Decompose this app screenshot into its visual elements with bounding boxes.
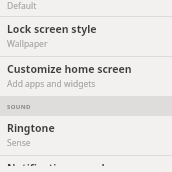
staticText: Notification sound bbox=[7, 161, 105, 166]
staticText: Lock screen style bbox=[7, 22, 97, 36]
button[interactable]: Notification sound bbox=[0, 156, 172, 172]
button[interactable]: Ringtone bbox=[0, 116, 172, 155]
button[interactable]: Lock screen style bbox=[0, 17, 172, 56]
staticText: Customize home screen bbox=[7, 62, 132, 76]
button[interactable]: Default bbox=[0, 0, 172, 16]
staticText: Default bbox=[7, 0, 37, 12]
staticText: Sense bbox=[7, 137, 31, 149]
staticText: Ringtone bbox=[7, 121, 55, 135]
staticText: SOUND bbox=[7, 103, 31, 111]
staticText: Add apps and widgets bbox=[7, 78, 96, 90]
button[interactable]: Customize home screen bbox=[0, 57, 172, 96]
staticText: Wallpaper bbox=[7, 38, 48, 50]
